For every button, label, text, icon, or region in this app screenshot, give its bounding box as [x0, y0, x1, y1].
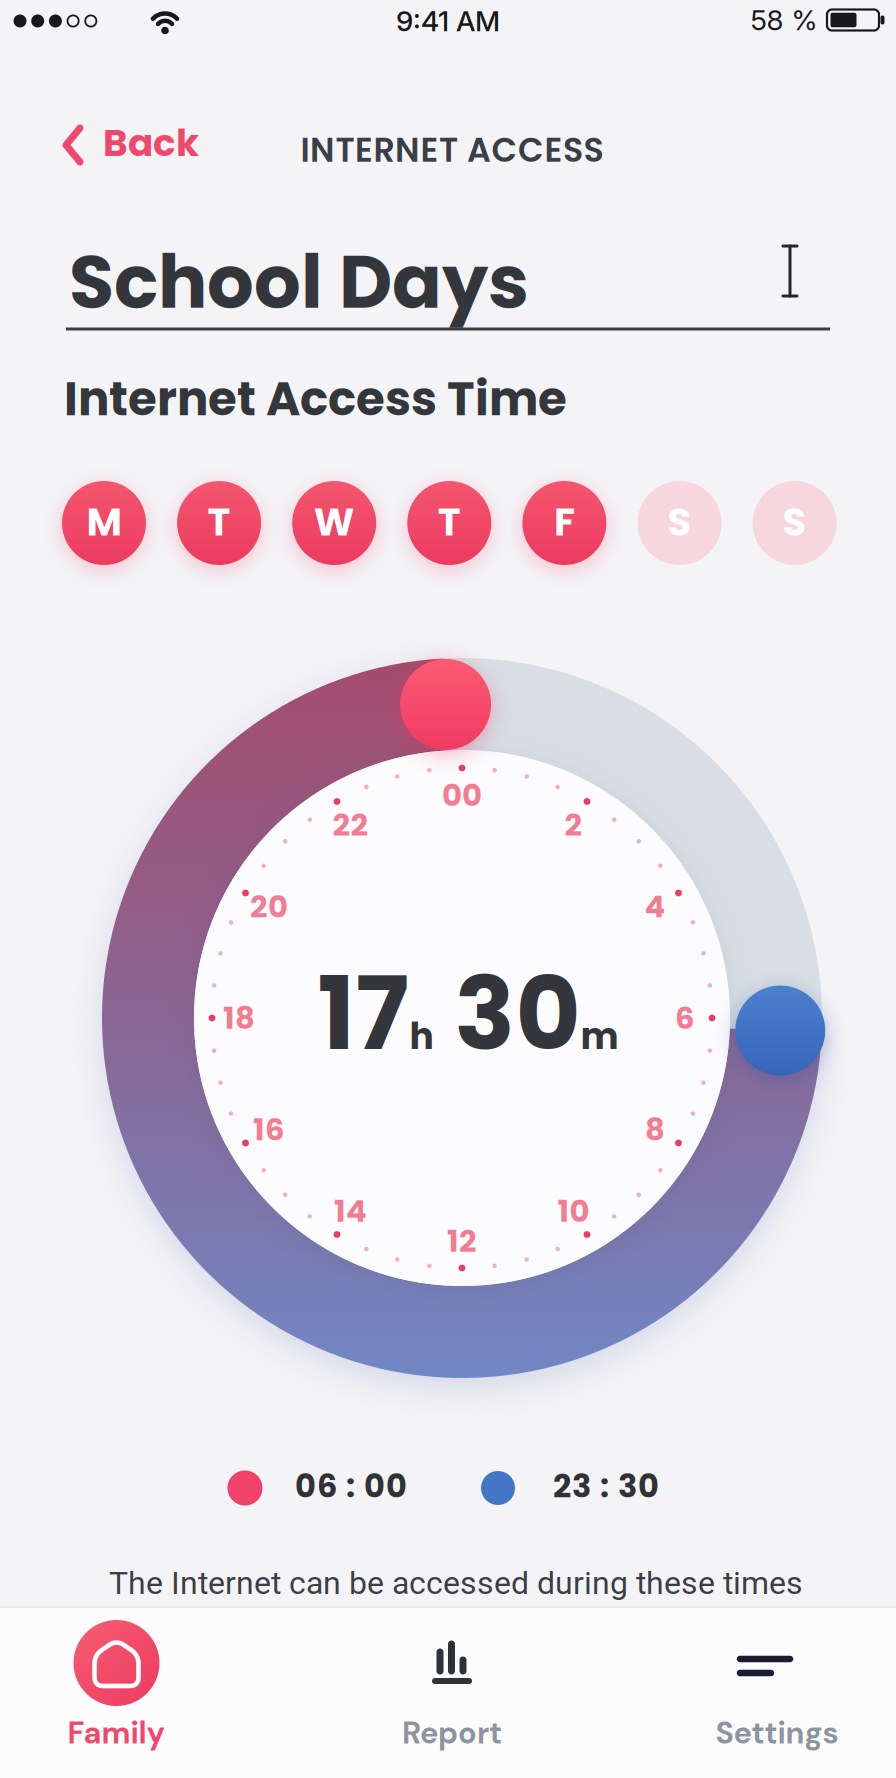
button[interactable]: Settings [714, 1611, 834, 1743]
staticText: The Internet can be accessed during thes… [109, 1564, 803, 1602]
button[interactable]: Tuesday [177, 481, 261, 565]
staticText: Report [402, 1713, 502, 1753]
staticText: T [438, 496, 461, 548]
button[interactable]: Friday [522, 481, 606, 565]
staticText: 58 % [750, 3, 817, 37]
staticText: F [554, 496, 575, 548]
staticText: S [667, 496, 691, 548]
staticText: Internet Access Time [64, 367, 567, 431]
staticText: 17 [317, 946, 409, 1082]
button[interactable]: Report [391, 1611, 511, 1743]
staticText: 2 [564, 804, 582, 846]
staticText: 20 [250, 886, 288, 927]
button[interactable]: Wednesday [292, 481, 376, 565]
button[interactable]: Saturday [637, 481, 721, 565]
staticText: Back [103, 117, 199, 168]
staticText: W [314, 496, 355, 548]
staticText: T [208, 496, 231, 548]
staticText: 18 [223, 997, 255, 1039]
staticText: 16 [253, 1109, 285, 1150]
staticText: 00 [442, 774, 482, 816]
staticText: 23 : 30 [553, 1464, 659, 1508]
staticText: 10 [557, 1190, 589, 1232]
button[interactable]: Thursday [407, 481, 491, 565]
staticText: Family [67, 1713, 165, 1753]
staticText: 8 [645, 1109, 665, 1150]
staticText: 06 : 00 [295, 1464, 407, 1508]
staticText: School Days [69, 232, 529, 332]
staticText: INTERNET ACCESS [300, 127, 603, 173]
staticText: 12 [447, 1220, 477, 1262]
staticText: 22 [332, 804, 368, 846]
staticText: Settings [715, 1713, 838, 1753]
button[interactable]: Monday [62, 481, 146, 565]
staticText: S [783, 496, 807, 548]
staticText: 9:41 AM [396, 4, 500, 38]
staticText: m [580, 1012, 618, 1061]
button[interactable]: Back [63, 117, 199, 172]
staticText: M [86, 496, 121, 548]
button[interactable]: Sunday [753, 481, 837, 565]
button[interactable]: Family [56, 1611, 176, 1743]
staticText: h [409, 1012, 433, 1061]
staticText: 30 [454, 946, 580, 1082]
staticText: 14 [334, 1190, 367, 1232]
staticText: 6 [675, 997, 695, 1039]
staticText: 4 [645, 886, 666, 927]
